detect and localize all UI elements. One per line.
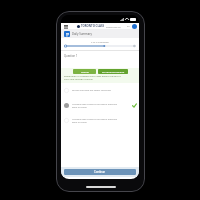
- button[interactable]: Did the site have any safety concerns?: [64, 83, 137, 98]
- staticText: Anything that concerns the flow of elect…: [72, 118, 118, 121]
- staticText: Did the site have any safety concerns?: [72, 89, 111, 92]
- button[interactable]: Anything that concerns the flow of elect…: [64, 113, 137, 128]
- staticText: work or install.: [72, 106, 88, 109]
- staticText: Daily Summary: [72, 32, 92, 36]
- staticText: TORONTO CLASS: [81, 24, 104, 28]
- button[interactable]: Continue: [64, 169, 136, 175]
- button[interactable]: Anything that concerns the flow of elect…: [64, 98, 137, 113]
- staticText: I'm Running Behind: [102, 70, 125, 73]
- staticText: Submit: [81, 70, 89, 73]
- button[interactable]: Submit: [73, 69, 96, 74]
- button[interactable]: Account: [132, 24, 137, 29]
- staticText: work or install.: [72, 121, 88, 124]
- staticText: Question 1: [64, 54, 78, 58]
- button[interactable]: Menu: [63, 24, 68, 29]
- staticText: Remember to complete your tasks before t…: [64, 75, 121, 78]
- staticText: TECHNICIAN: [106, 25, 121, 28]
- button[interactable]: I'm Running Behind: [98, 69, 128, 74]
- staticText: your shift through console.: [64, 78, 94, 81]
- staticText: 2 of 3 Complete: [91, 40, 109, 43]
- staticText: Anything that concerns the flow of elect…: [72, 103, 118, 106]
- staticText: EN: [127, 25, 131, 28]
- staticText: Continue: [94, 170, 106, 174]
